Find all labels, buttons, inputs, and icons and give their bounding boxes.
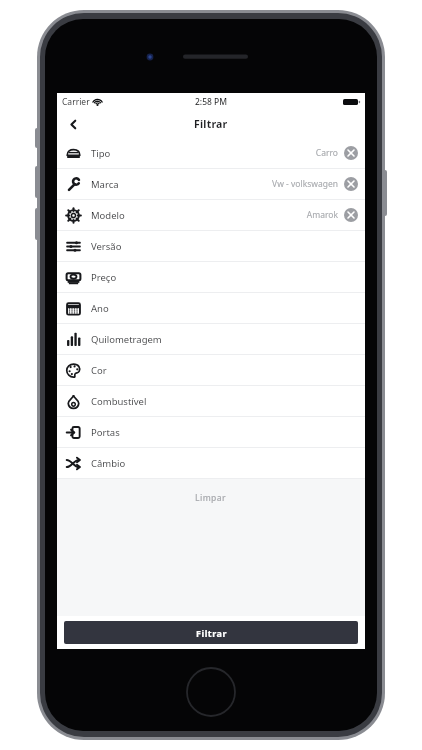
button[interactable]: Quilometragem bbox=[57, 324, 365, 354]
button[interactable]: Versão bbox=[57, 231, 365, 261]
staticText: Filtrar bbox=[194, 117, 228, 131]
staticText: Versão bbox=[91, 240, 122, 253]
button[interactable]: Marca bbox=[57, 169, 365, 199]
button[interactable]: Cor bbox=[57, 355, 365, 385]
staticText: Quilometragem bbox=[91, 333, 162, 346]
staticText: Portas bbox=[91, 426, 120, 439]
staticText: Filtrar bbox=[196, 627, 227, 639]
button[interactable]: Ano bbox=[57, 293, 365, 323]
staticText: Amarok bbox=[306, 209, 338, 221]
staticText: Cor bbox=[91, 364, 107, 377]
staticText: 2:58 PM bbox=[195, 96, 228, 108]
staticText: Tipo bbox=[91, 147, 111, 160]
staticText: Modelo bbox=[91, 209, 125, 222]
staticText: Limpar bbox=[195, 492, 227, 504]
button[interactable]: Limpar bbox=[181, 488, 241, 508]
button[interactable]: Câmbio bbox=[57, 448, 365, 478]
button[interactable]: Back bbox=[60, 111, 86, 137]
staticText: Câmbio bbox=[91, 457, 126, 470]
staticText: Marca bbox=[91, 178, 119, 191]
button[interactable]: Combustível bbox=[57, 386, 365, 416]
staticText: Carrier bbox=[62, 96, 90, 108]
staticText: Vw - volkswagen bbox=[272, 178, 338, 190]
button[interactable]: Clear Marca bbox=[344, 177, 358, 191]
button[interactable]: Clear Tipo bbox=[344, 146, 358, 160]
staticText: Preço bbox=[91, 271, 117, 284]
button[interactable]: Portas bbox=[57, 417, 365, 447]
staticText: Combustível bbox=[91, 395, 147, 408]
staticText: Carro bbox=[315, 147, 338, 159]
button[interactable]: Filtrar bbox=[64, 621, 358, 644]
button[interactable]: Clear Modelo bbox=[344, 208, 358, 222]
button[interactable]: Preço bbox=[57, 262, 365, 292]
staticText: Ano bbox=[91, 302, 109, 315]
button[interactable]: Modelo bbox=[57, 200, 365, 230]
button[interactable]: Tipo bbox=[57, 138, 365, 168]
